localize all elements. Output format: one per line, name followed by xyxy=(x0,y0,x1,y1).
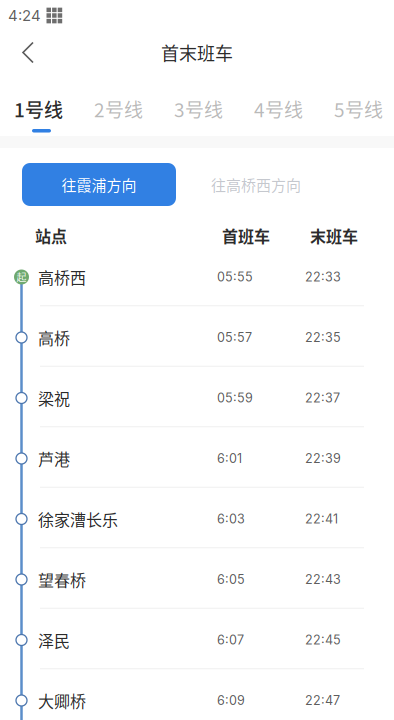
button[interactable]: 1号线 xyxy=(14,82,94,136)
staticText: 05:55 xyxy=(217,269,253,285)
staticText: 22:43 xyxy=(305,572,341,587)
button[interactable]: 往高桥西方向 xyxy=(176,163,336,206)
staticText: 05:59 xyxy=(217,390,253,406)
staticText: 6:01 xyxy=(217,451,242,466)
button[interactable]: 5号线 xyxy=(334,82,394,136)
staticText: 22:37 xyxy=(305,390,340,406)
button[interactable]: 徐家漕长乐 xyxy=(0,488,394,548)
button[interactable]: 返回 xyxy=(6,31,50,74)
staticText: 4号线 xyxy=(254,95,303,123)
staticText: 末班车 xyxy=(310,224,358,247)
staticText: 22:33 xyxy=(305,269,341,285)
staticText: 站点 xyxy=(35,224,67,247)
button[interactable]: 高桥 xyxy=(0,306,394,367)
button[interactable]: 4号线 xyxy=(254,82,334,136)
button[interactable]: 梁祝 xyxy=(0,367,394,427)
staticText: 6:09 xyxy=(217,693,245,708)
staticText: 高桥西 xyxy=(38,265,86,289)
button[interactable]: 起 xyxy=(0,246,394,306)
staticText: 6:03 xyxy=(217,511,245,527)
staticText: 往霞浦方向 xyxy=(61,174,136,195)
staticText: 2号线 xyxy=(94,95,143,123)
staticText: 1号线 xyxy=(14,95,63,123)
staticText: 首末班车 xyxy=(161,39,233,66)
button[interactable]: 往霞浦方向 xyxy=(22,163,176,206)
button[interactable]: 大卿桥 xyxy=(0,669,394,720)
staticText: 徐家漕长乐 xyxy=(38,507,118,531)
button[interactable]: 芦港 xyxy=(0,427,394,488)
staticText: 22:39 xyxy=(305,451,341,466)
staticText: 首班车 xyxy=(222,224,270,247)
staticText: 往高桥西方向 xyxy=(211,174,301,195)
staticText: 5号线 xyxy=(334,95,383,123)
staticText: 6:05 xyxy=(217,572,245,587)
staticText: 05:57 xyxy=(217,330,252,345)
staticText: 泽民 xyxy=(38,628,70,652)
staticText: 6:07 xyxy=(217,632,244,648)
staticText: 芦港 xyxy=(38,447,70,470)
button[interactable]: 2号线 xyxy=(94,82,174,136)
staticText: 望春桥 xyxy=(38,568,86,591)
staticText: 22:45 xyxy=(305,632,341,648)
button[interactable]: 望春桥 xyxy=(0,548,394,609)
staticText: 22:35 xyxy=(305,330,341,345)
staticText: 3号线 xyxy=(174,95,223,123)
staticText: 高桥 xyxy=(38,326,70,349)
staticText: 22:47 xyxy=(305,693,340,708)
staticText: 4:24 xyxy=(8,6,41,24)
button[interactable]: 泽民 xyxy=(0,609,394,669)
staticText: 起 xyxy=(16,270,26,284)
staticText: 22:41 xyxy=(305,511,338,527)
staticText: 大卿桥 xyxy=(38,689,86,712)
staticText: 梁祝 xyxy=(38,386,70,410)
button[interactable]: 3号线 xyxy=(174,82,254,136)
